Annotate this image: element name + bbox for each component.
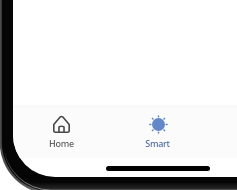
- other: Home: [53, 115, 70, 133]
- staticText: Smart: [145, 137, 170, 149]
- button[interactable]: Smart: [109, 107, 206, 158]
- other: Smart: [149, 115, 168, 134]
- button[interactable]: Home: [13, 107, 109, 158]
- staticText: Home: [49, 137, 74, 149]
